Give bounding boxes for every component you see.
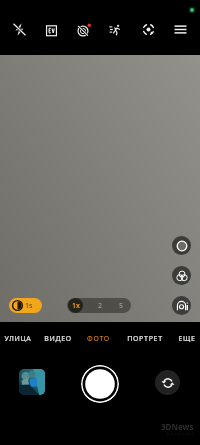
button[interactable]: 5 xyxy=(112,298,130,313)
staticText: УЛИЦА xyxy=(4,334,32,344)
button[interactable]: Take photo xyxy=(81,365,119,403)
button[interactable]: AI scene detection xyxy=(135,16,161,42)
button[interactable]: УЛИЦА xyxy=(0,331,42,347)
button[interactable]: Colour filters xyxy=(172,266,191,285)
staticText: ПОРТРЕТ xyxy=(127,334,163,344)
button[interactable]: 1s xyxy=(9,298,42,313)
button[interactable]: Switch camera xyxy=(155,370,180,395)
button[interactable]: ЕЩЕ xyxy=(163,331,200,347)
button[interactable]: 1x xyxy=(68,298,83,313)
staticText: 1x xyxy=(72,301,80,311)
staticText: 1s xyxy=(25,301,33,311)
staticText: 5 xyxy=(119,301,124,311)
button[interactable]: Exposure value xyxy=(38,17,64,43)
button[interactable]: Flash ring xyxy=(172,236,191,255)
staticText: 2 xyxy=(98,301,103,311)
button[interactable]: 2 xyxy=(91,298,109,313)
staticText: ВИДЕО xyxy=(44,334,72,344)
staticText: Daily Digital Digest xyxy=(167,432,194,436)
button[interactable]: ВИДЕО xyxy=(34,331,82,347)
staticText: ЕЩЕ xyxy=(178,334,196,344)
button[interactable]: Beauty xyxy=(172,296,191,315)
button[interactable]: HDR off xyxy=(70,17,96,43)
button[interactable]: ФОТО xyxy=(74,331,122,347)
staticText: 3DNews xyxy=(161,421,194,432)
button[interactable]: Motion capture xyxy=(102,16,128,42)
staticText: ФОТО xyxy=(87,334,110,344)
button[interactable]: ПОРТРЕТ xyxy=(121,331,169,347)
button[interactable]: Menu xyxy=(167,16,193,42)
button[interactable]: Flash off xyxy=(6,16,32,42)
button[interactable]: Gallery xyxy=(19,369,45,395)
